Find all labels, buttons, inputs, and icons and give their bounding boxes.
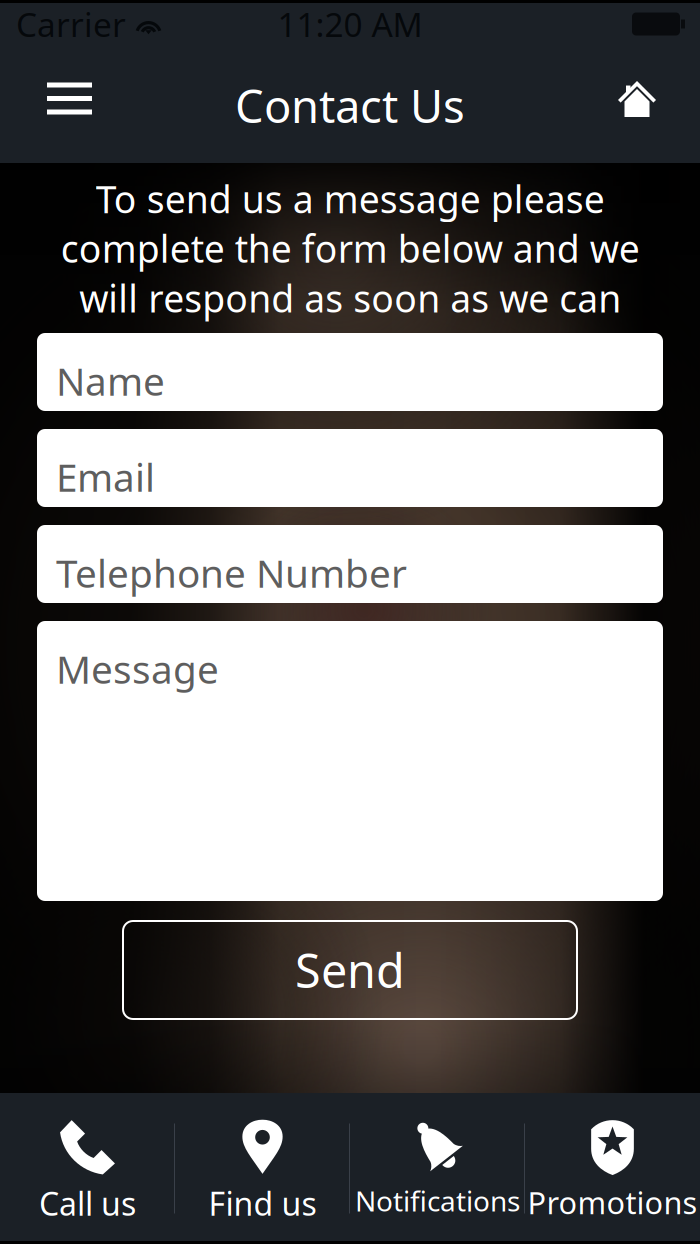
button[interactable]: Message (37, 621, 663, 901)
button[interactable]: Promotions (525, 1093, 700, 1244)
button[interactable]: Call us (0, 1093, 175, 1244)
staticText: Message (56, 643, 219, 694)
button[interactable]: Telephone Number (37, 525, 663, 603)
button[interactable]: Send (123, 921, 577, 1019)
staticText: To send us a message please complete the… (60, 174, 639, 323)
staticText: Name (56, 355, 165, 406)
button[interactable]: Name (37, 333, 663, 411)
staticText: Carrier (16, 2, 126, 46)
button[interactable]: Find us (175, 1093, 350, 1244)
button[interactable]: Menu (47, 82, 92, 128)
staticText: Telephone Number (56, 547, 407, 598)
staticText: Promotions (527, 1182, 697, 1223)
staticText: Find us (208, 1182, 316, 1224)
staticText: Call us (39, 1182, 136, 1224)
button[interactable]: Home (618, 80, 656, 130)
staticText: Send (295, 939, 405, 1001)
button[interactable]: Email (37, 429, 663, 507)
staticText: Email (56, 451, 155, 502)
staticText: Notifications (355, 1182, 520, 1219)
staticText: 11:20 AM (277, 2, 422, 46)
button[interactable]: Notifications (350, 1093, 525, 1244)
staticText: Contact Us (235, 75, 465, 136)
